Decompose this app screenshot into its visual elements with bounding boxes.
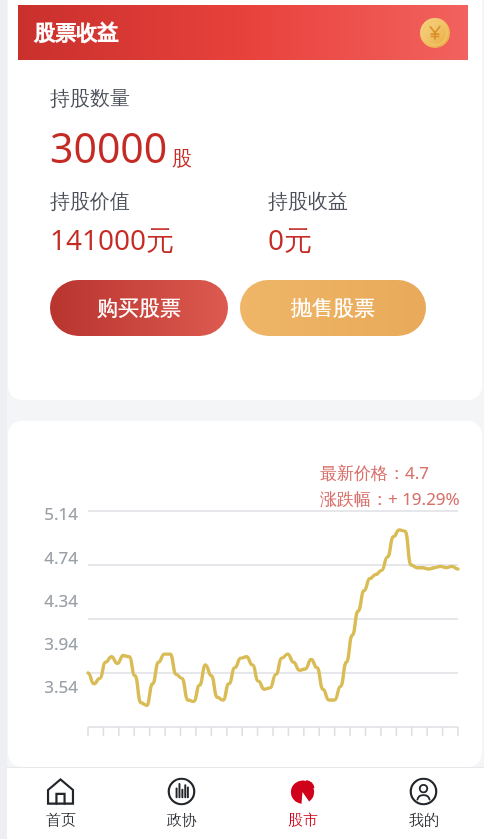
staticText: 持股收益 <box>268 189 348 214</box>
staticText: 购买股票 <box>97 295 181 321</box>
staticText: 5.14 <box>22 502 78 525</box>
staticText: 4.74 <box>22 546 78 569</box>
staticText: 4.34 <box>22 589 78 612</box>
staticText: 政协 <box>167 811 197 830</box>
button[interactable]: 收益说明 <box>420 18 450 48</box>
button[interactable]: 股市 <box>242 767 363 839</box>
staticText: 最新价格：4.7 <box>320 461 430 484</box>
staticText: 涨跌幅：+ 19.29% <box>320 487 460 510</box>
button[interactable]: 政协 <box>121 767 242 839</box>
staticText: 持股数量 <box>50 86 130 111</box>
staticText: 30000 <box>50 119 168 175</box>
button[interactable]: 购买股票 <box>50 280 228 336</box>
staticText: 3.54 <box>22 675 78 698</box>
staticText: 0元 <box>268 220 313 258</box>
staticText: 141000元 <box>50 220 175 258</box>
staticText: 股票收益 <box>34 20 118 46</box>
button[interactable]: 抛售股票 <box>240 280 426 336</box>
staticText: 股市 <box>288 811 318 830</box>
staticText: 3.94 <box>22 632 78 655</box>
button[interactable]: 我的 <box>363 767 484 839</box>
staticText: 我的 <box>409 811 439 830</box>
staticText: 抛售股票 <box>291 295 375 321</box>
staticText: 持股价值 <box>50 189 130 214</box>
button[interactable]: 首页 <box>0 767 121 839</box>
staticText: 股 <box>172 146 192 171</box>
staticText: 首页 <box>46 811 76 830</box>
